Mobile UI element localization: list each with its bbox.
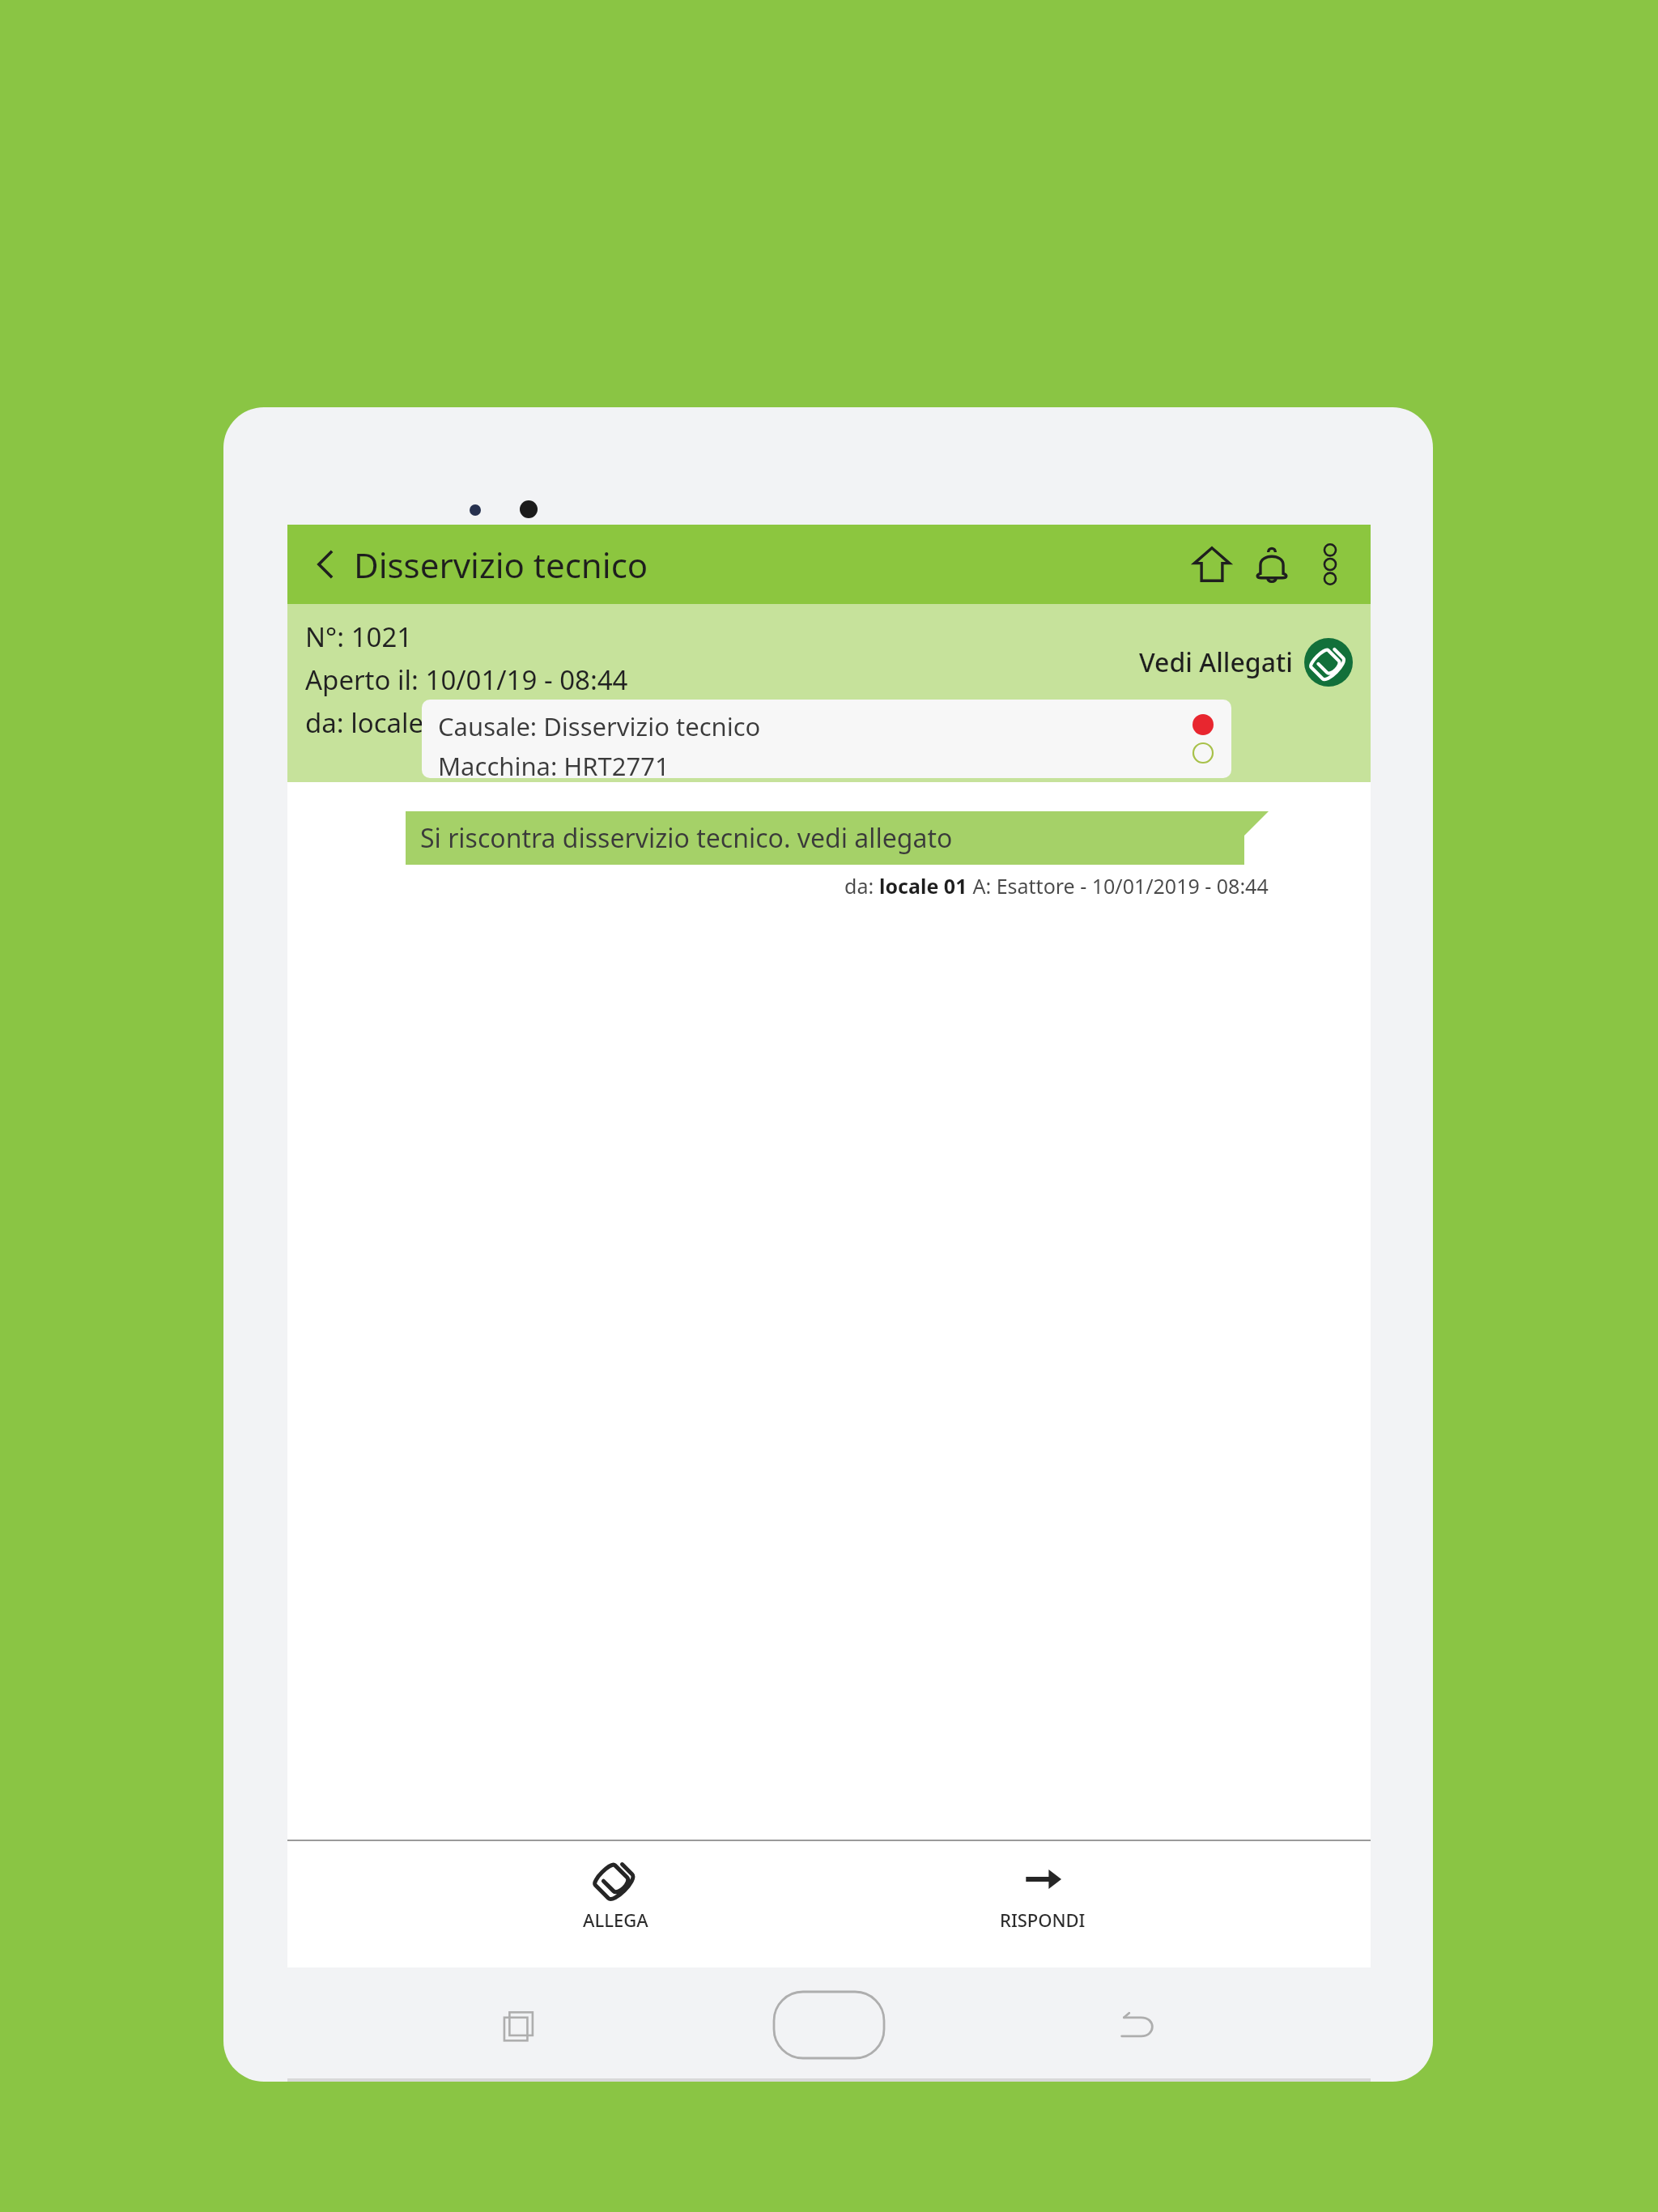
button[interactable]: Back — [1100, 1989, 1173, 2061]
button[interactable]: Vedi Allegati — [1139, 638, 1353, 687]
staticText: Causale: Disservizio tecnico — [438, 709, 761, 743]
button[interactable]: More options — [1307, 542, 1353, 587]
button[interactable]: Recents — [486, 1989, 559, 2061]
staticText: A: Esattore - 10/01/2019 - 08:44 — [967, 872, 1269, 900]
button[interactable]: Notifications — [1243, 535, 1301, 593]
button[interactable]: RISPONDI — [958, 1859, 1128, 1932]
staticText: ALLEGA — [583, 1908, 648, 1932]
staticText: locale 01 — [879, 872, 967, 900]
button[interactable]: Home — [1183, 535, 1241, 593]
staticText: RISPONDI — [1000, 1908, 1086, 1932]
button[interactable]: Causale: Disservizio tecnico — [422, 700, 1231, 778]
staticText: Macchina: HRT2771 — [438, 749, 670, 778]
staticText: da: locale - a: Esattore — [305, 704, 579, 741]
button[interactable]: ALLEGA — [530, 1859, 700, 1932]
staticText: da: — [844, 872, 879, 900]
button[interactable]: Home — [756, 1984, 902, 2065]
staticText: Disservizio tecnico — [354, 542, 648, 588]
button[interactable]: Si riscontra disservizio tecnico. vedi a… — [406, 811, 1244, 865]
button[interactable]: Back — [304, 542, 347, 586]
staticText: Si riscontra disservizio tecnico. vedi a… — [420, 820, 953, 856]
staticText: Aperto il: 10/01/19 - 08:44 — [305, 661, 628, 698]
staticText: Vedi Allegati — [1139, 644, 1293, 680]
staticText: N°: 1021 — [305, 619, 413, 655]
